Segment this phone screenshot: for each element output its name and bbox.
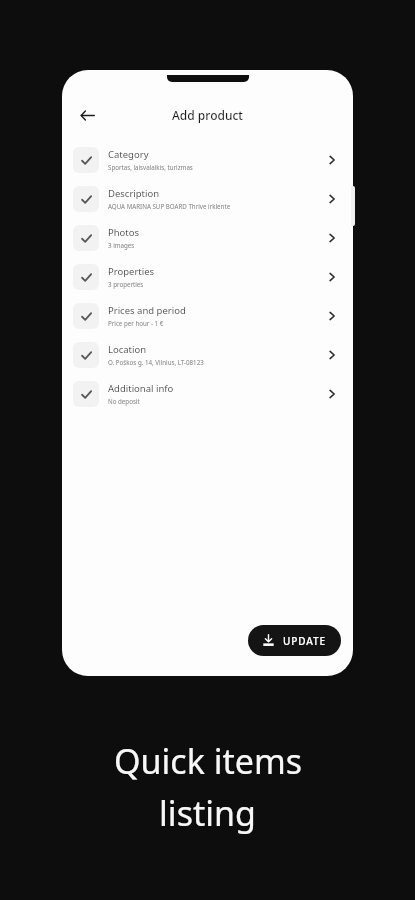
staticText: O. Poškos g. 14, Vilnius, LT-08123	[108, 358, 204, 366]
button[interactable]: Location	[62, 335, 353, 374]
staticText: Category	[108, 148, 149, 161]
button[interactable]: Properties	[62, 257, 353, 296]
button[interactable]: Additional info	[62, 374, 353, 413]
button[interactable]: Back	[72, 100, 102, 130]
staticText: Quick items	[114, 738, 302, 784]
staticText: Photos	[108, 226, 140, 239]
button[interactable]: Prices and period	[62, 296, 353, 335]
staticText: Sportas, laisvalaikis, turizmas	[108, 163, 193, 171]
staticText: 3 images	[108, 241, 135, 249]
button[interactable]: Description	[62, 179, 353, 218]
staticText: Add product	[172, 107, 243, 123]
staticText: Location	[108, 343, 147, 356]
staticText: Prices and period	[108, 304, 186, 317]
staticText: UPDATE	[283, 634, 327, 648]
staticText: Price per hour - 1 €	[108, 319, 164, 327]
staticText: listing	[159, 790, 256, 836]
staticText: Additional info	[108, 382, 174, 395]
staticText: Properties	[108, 265, 155, 278]
staticText: Description	[108, 187, 160, 200]
button[interactable]: Photos	[62, 218, 353, 257]
staticText: No deposit	[108, 397, 140, 405]
staticText: 3 properties	[108, 280, 144, 288]
button[interactable]: UPDATE	[248, 625, 341, 656]
button[interactable]: Category	[62, 140, 353, 179]
staticText: AQUA MARINA SUP BOARD Thrive irklente	[108, 202, 231, 210]
